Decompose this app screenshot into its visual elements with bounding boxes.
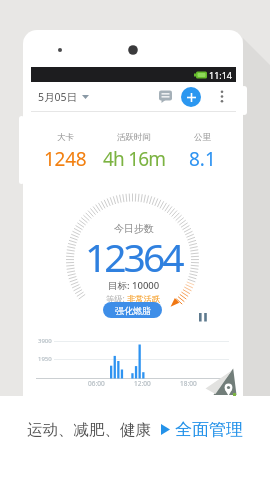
staticText: 全面管理: [175, 419, 243, 440]
staticText: 公里: [194, 132, 211, 143]
button[interactable]: [181, 87, 201, 107]
staticText: 1248: [44, 146, 87, 172]
staticText: 18:00: [180, 379, 197, 388]
staticText: 12364: [85, 230, 182, 283]
button[interactable]: 5月05日: [38, 90, 89, 104]
staticText: 大卡: [57, 132, 74, 143]
button[interactable]: [159, 90, 172, 103]
staticText: 12:00: [134, 379, 151, 388]
staticText: 3900: [38, 337, 52, 345]
staticText: 1950: [38, 355, 52, 363]
staticText: 8.1: [189, 146, 216, 172]
staticText: 5月05日: [38, 90, 78, 104]
staticText: 06:00: [88, 379, 105, 388]
button[interactable]: 全面管理: [161, 419, 243, 440]
staticText: 运动、减肥、健康: [27, 420, 151, 440]
staticText: 强化燃脂: [115, 305, 151, 316]
staticText: 目标: 10000: [108, 279, 160, 292]
staticText: 今日步数: [114, 222, 154, 235]
button[interactable]: [220, 90, 224, 103]
staticText: 11:14: [209, 69, 233, 81]
button[interactable]: 强化燃脂: [103, 302, 162, 318]
staticText: 非常活跃: [127, 294, 161, 304]
staticText: 活跃时间: [117, 132, 151, 143]
staticText: 4h 16m: [103, 146, 166, 172]
staticText: 等级:: [106, 293, 127, 304]
